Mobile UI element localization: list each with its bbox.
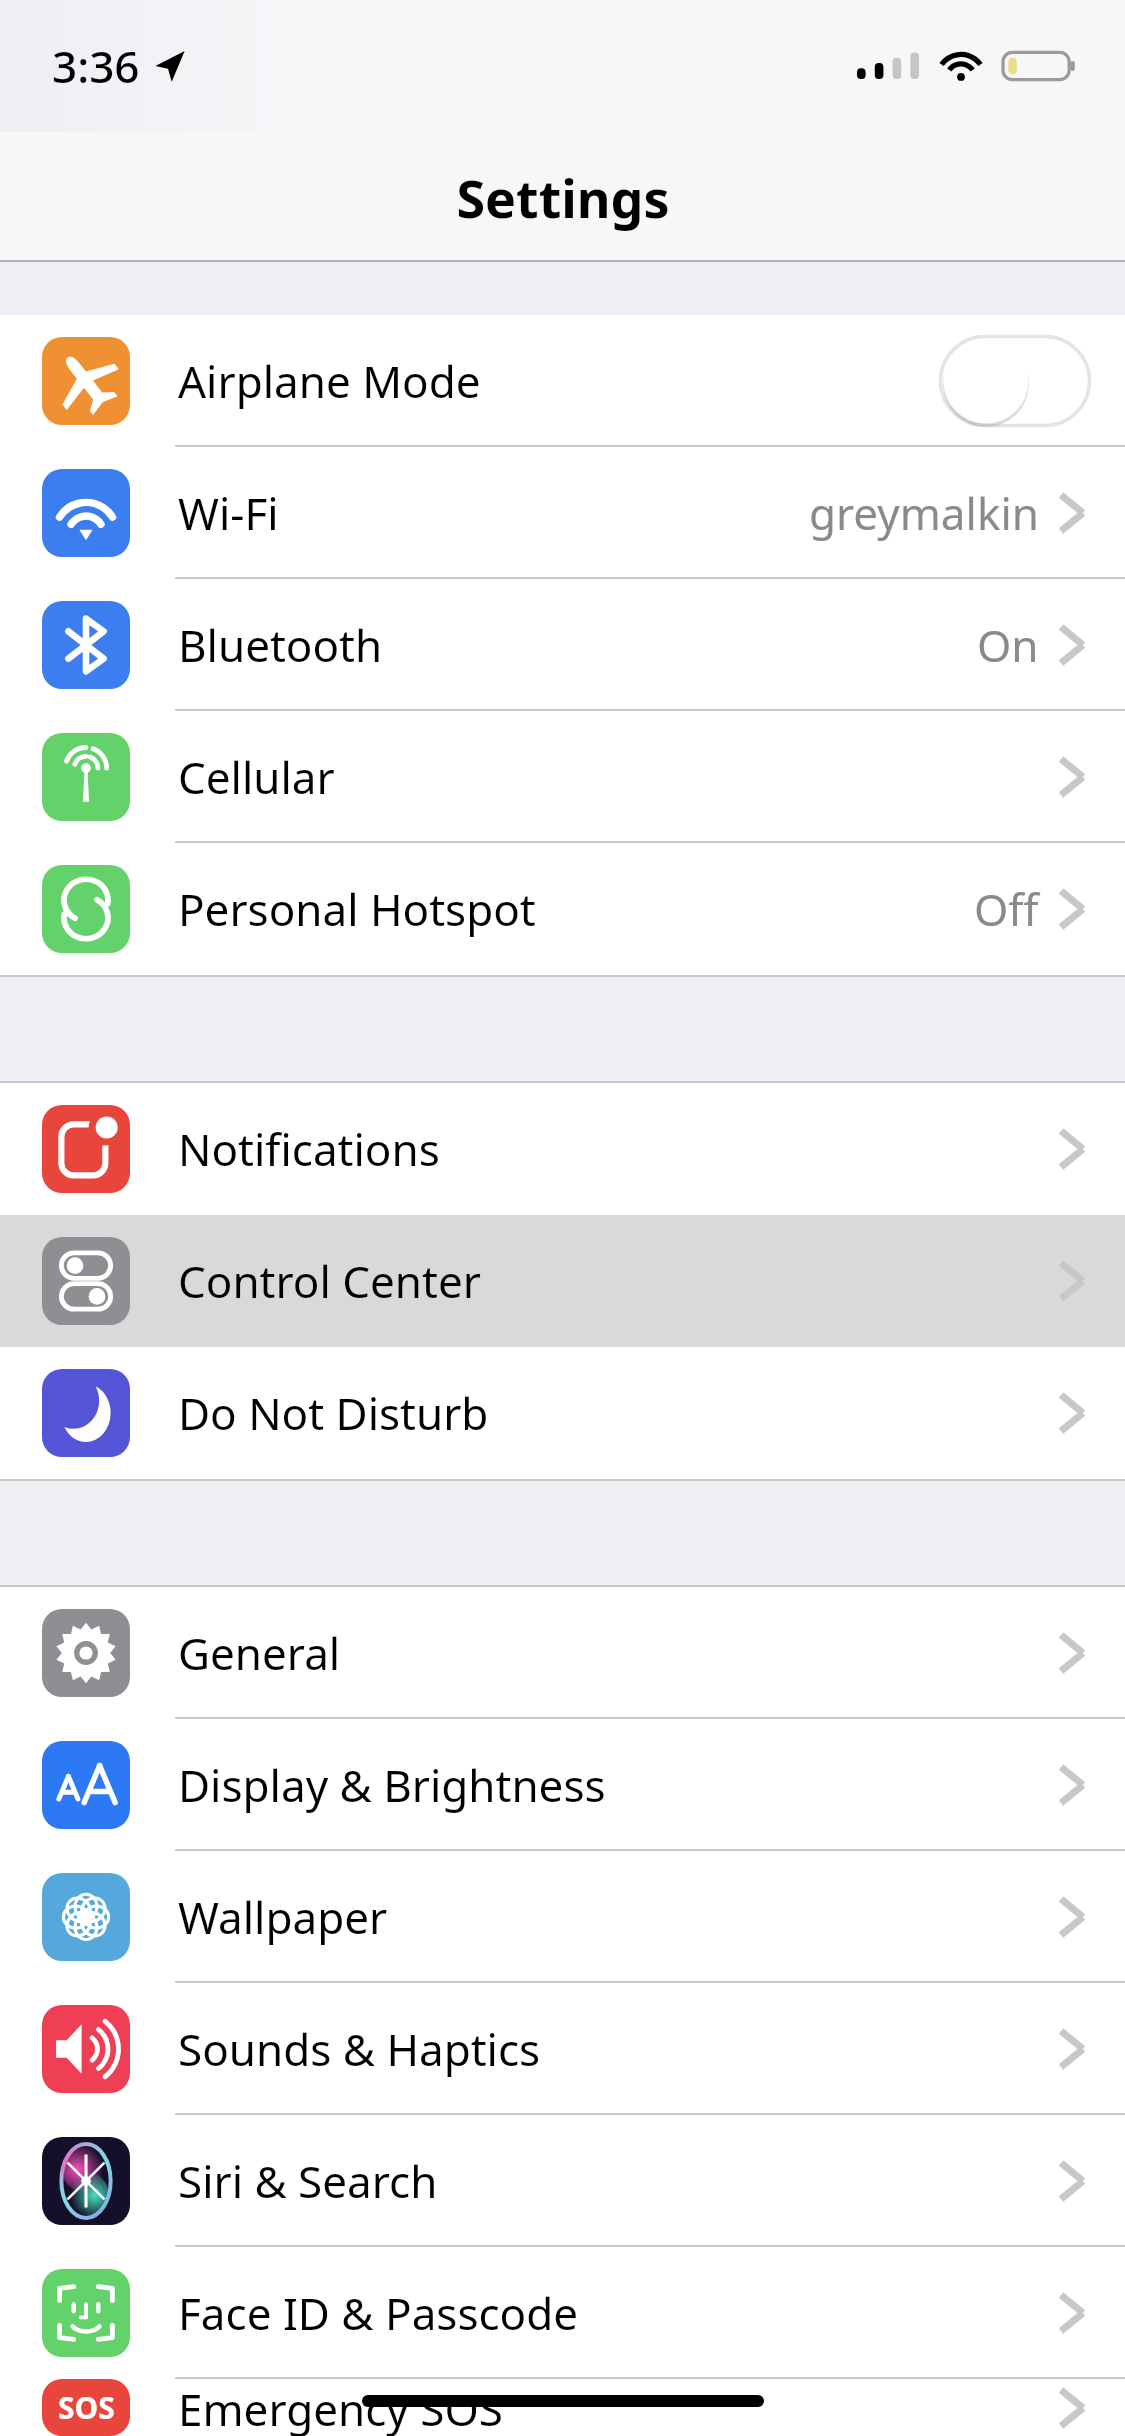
- button[interactable]: Wi-Fi: [0, 447, 1125, 579]
- button[interactable]: Notifications: [0, 1083, 1125, 1215]
- staticText: Siri & Search: [178, 2151, 438, 2211]
- button[interactable]: Airplane Mode: [0, 315, 1125, 447]
- staticText: Off: [974, 879, 1039, 939]
- staticText: Display & Brightness: [178, 1755, 606, 1815]
- button[interactable]: Airplane Mode toggle: [939, 335, 1091, 427]
- staticText: Wi-Fi: [178, 483, 279, 543]
- staticText: Control Center: [178, 1251, 481, 1311]
- button[interactable]: Personal Hotspot: [0, 843, 1125, 975]
- staticText: Personal Hotspot: [178, 879, 536, 939]
- staticText: Wallpaper: [178, 1887, 388, 1947]
- staticText: General: [178, 1623, 341, 1683]
- button[interactable]: Cellular: [0, 711, 1125, 843]
- button[interactable]: Display & Brightness: [0, 1719, 1125, 1851]
- button[interactable]: SOS: [0, 2379, 1125, 2436]
- staticText: On: [977, 615, 1039, 675]
- staticText: Emergency SOS: [178, 2379, 503, 2436]
- button[interactable]: General: [0, 1587, 1125, 1719]
- staticText: Cellular: [178, 747, 335, 807]
- button[interactable]: Face ID & Passcode: [0, 2247, 1125, 2379]
- button[interactable]: Wallpaper: [0, 1851, 1125, 1983]
- button[interactable]: Siri & Search: [0, 2115, 1125, 2247]
- staticText: Face ID & Passcode: [178, 2283, 579, 2343]
- staticText: Sounds & Haptics: [178, 2019, 541, 2079]
- button[interactable]: Do Not Disturb: [0, 1347, 1125, 1479]
- staticText: Bluetooth: [178, 615, 383, 675]
- button[interactable]: Bluetooth: [0, 579, 1125, 711]
- staticText: Airplane Mode: [178, 351, 481, 411]
- button[interactable]: Sounds & Haptics: [0, 1983, 1125, 2115]
- staticText: 3:36: [52, 36, 140, 96]
- staticText: Notifications: [178, 1119, 440, 1179]
- staticText: Settings: [456, 162, 670, 233]
- staticText: SOS: [58, 2387, 115, 2428]
- staticText: Do Not Disturb: [178, 1383, 489, 1443]
- staticText: greymalkin: [809, 483, 1039, 543]
- button[interactable]: Control Center: [0, 1215, 1125, 1347]
